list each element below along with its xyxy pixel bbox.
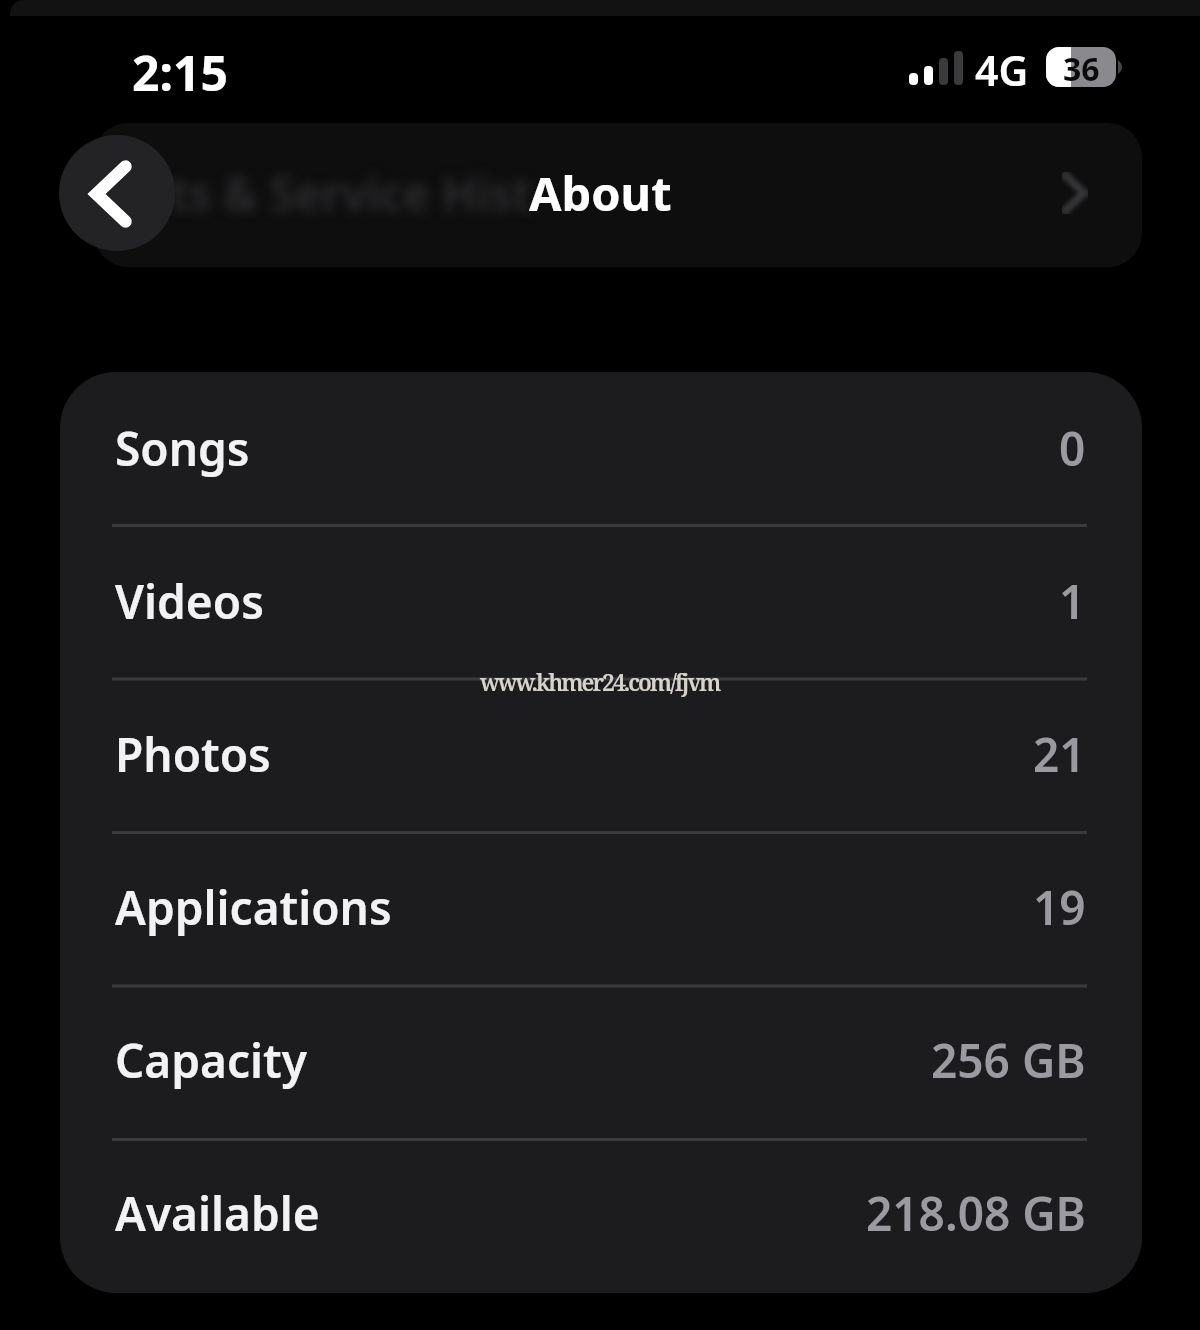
button[interactable]: Photos [115, 678, 1086, 831]
button[interactable]: Songs [115, 372, 1086, 525]
staticText: 36 [1063, 47, 1100, 87]
button[interactable]: Capacity [115, 984, 1086, 1137]
staticText: 218.08 GB [866, 1182, 1086, 1245]
staticText: Available [115, 1182, 320, 1245]
staticText: 1 [1059, 570, 1086, 633]
button[interactable] [59, 135, 175, 251]
staticText: Videos [115, 570, 264, 633]
button[interactable]: Available [115, 1137, 1086, 1290]
staticText: 19 [1033, 876, 1086, 939]
staticText: Capacity [115, 1029, 307, 1092]
staticText: 21 [1033, 723, 1086, 786]
staticText: About [529, 161, 672, 225]
staticText: 2:15 [132, 40, 228, 94]
staticText: ts & Service Hist [170, 162, 531, 225]
staticText: Applications [115, 876, 392, 939]
staticText: Songs [115, 417, 250, 480]
button[interactable]: Applications [115, 831, 1086, 984]
staticText: Photos [115, 723, 271, 786]
staticText: 0 [1059, 417, 1086, 480]
button[interactable]: Videos [115, 525, 1086, 678]
staticText: www.khmer24.com/fjvm [480, 666, 720, 697]
staticText: 4G [975, 42, 1029, 92]
staticText: 256 GB [931, 1029, 1086, 1092]
